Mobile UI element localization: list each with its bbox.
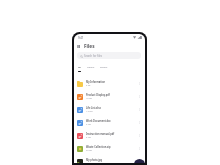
staticText: 22 MB — [86, 149, 92, 152]
button[interactable]: Menu — [77, 44, 80, 49]
staticText: My photo.jpg — [86, 158, 103, 161]
staticText: 3 MB — [86, 123, 91, 126]
button[interactable]: Work Document.doc — [74, 116, 145, 129]
button[interactable]: All — [78, 66, 81, 72]
staticText: 5 GB — [86, 84, 91, 87]
button[interactable]: More options — [137, 120, 142, 125]
button[interactable]: Search for files — [77, 52, 141, 59]
button[interactable]: Add new file — [134, 159, 145, 163]
staticText: Waste Collection.zip — [86, 145, 111, 148]
staticText: All — [78, 66, 81, 69]
button[interactable]: Life List.xlsx — [74, 103, 145, 116]
button[interactable]: More options — [137, 133, 142, 138]
staticText: Product Display.pdf — [86, 93, 110, 96]
staticText: 1.2 MB — [86, 110, 93, 113]
button[interactable]: Product Display.pdf — [74, 90, 145, 103]
button[interactable]: My Information — [74, 77, 145, 90]
button[interactable]: More options — [137, 159, 142, 163]
button[interactable]: Offline — [87, 66, 95, 71]
button[interactable]: My photo.jpg — [74, 155, 145, 163]
staticText: Recent — [100, 66, 108, 69]
staticText: Instruction manual.pdf — [86, 132, 115, 135]
staticText: My Information — [86, 80, 106, 83]
staticText: 12 MB — [86, 97, 92, 100]
staticText: Work Document.doc — [86, 119, 111, 122]
button[interactable]: Instruction manual.pdf — [74, 129, 145, 142]
button[interactable]: More options — [137, 107, 142, 112]
staticText: Search for files — [84, 54, 103, 58]
button[interactable]: Recent — [100, 66, 108, 71]
button[interactable]: Waste Collection.zip — [74, 142, 145, 155]
button[interactable]: More options — [137, 81, 142, 86]
button[interactable]: More options — [137, 146, 142, 151]
button[interactable]: More options — [137, 94, 142, 99]
staticText: Files — [84, 43, 95, 49]
staticText: 9:41 — [78, 36, 84, 40]
staticText: Life List.xlsx — [86, 106, 101, 109]
staticText: 8 MB — [86, 136, 91, 139]
staticText: Offline — [87, 66, 95, 69]
